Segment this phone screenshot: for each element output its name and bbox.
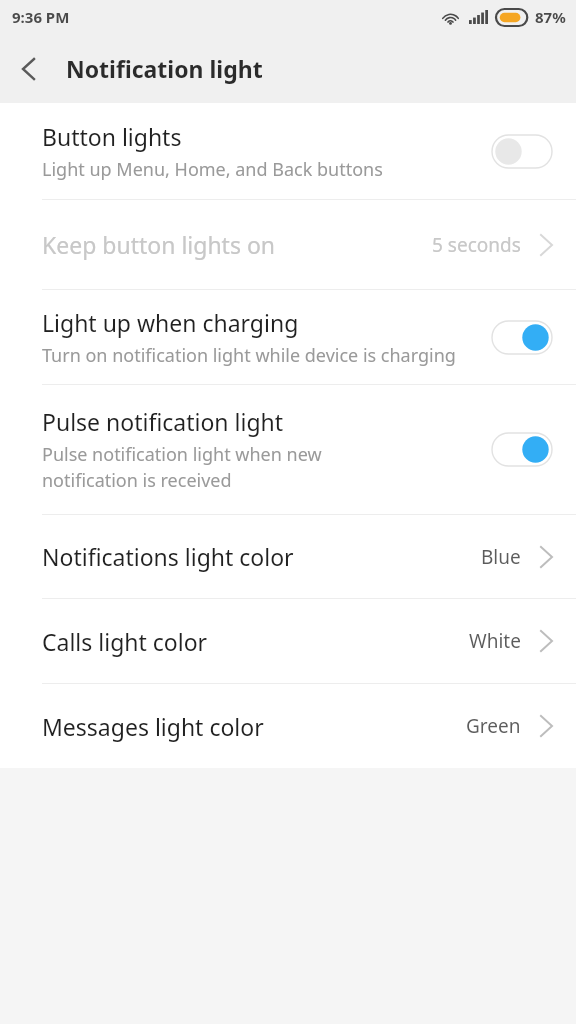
staticText: Messages light color — [42, 711, 466, 742]
staticText: 9:36 PM — [12, 7, 70, 27]
staticText: Button lights — [42, 121, 182, 152]
button[interactable]: Keep button lights on — [0, 200, 576, 289]
button[interactable]: Back — [0, 41, 56, 97]
staticText: White — [469, 628, 521, 654]
staticText: Notifications light color — [42, 541, 481, 572]
button[interactable]: Button lights — [0, 103, 576, 199]
staticText: Light up Menu, Home, and Back buttons — [42, 157, 480, 182]
button[interactable]: Pulse notification light — [0, 385, 576, 514]
button[interactable]: On — [492, 433, 552, 466]
staticText: Light up when charging — [42, 307, 299, 338]
button[interactable]: Messages light color — [0, 684, 576, 768]
button[interactable]: Notifications light color — [0, 515, 576, 598]
staticText: Green — [466, 713, 521, 739]
staticText: Pulse notification light — [42, 406, 284, 437]
staticText: Notification light — [66, 53, 263, 84]
button[interactable]: On — [492, 321, 552, 354]
staticText: Turn on notification light while device … — [42, 343, 480, 368]
staticText: 5 seconds — [432, 232, 521, 258]
button[interactable]: Calls light color — [0, 599, 576, 683]
button[interactable]: Off — [492, 135, 552, 168]
staticText: Calls light color — [42, 626, 469, 657]
button[interactable]: Light up when charging — [0, 290, 576, 384]
staticText: Blue — [481, 544, 521, 570]
staticText: Pulse notification light when new notifi… — [42, 442, 384, 493]
staticText: Keep button lights on — [42, 229, 432, 260]
staticText: 87% — [535, 7, 566, 27]
